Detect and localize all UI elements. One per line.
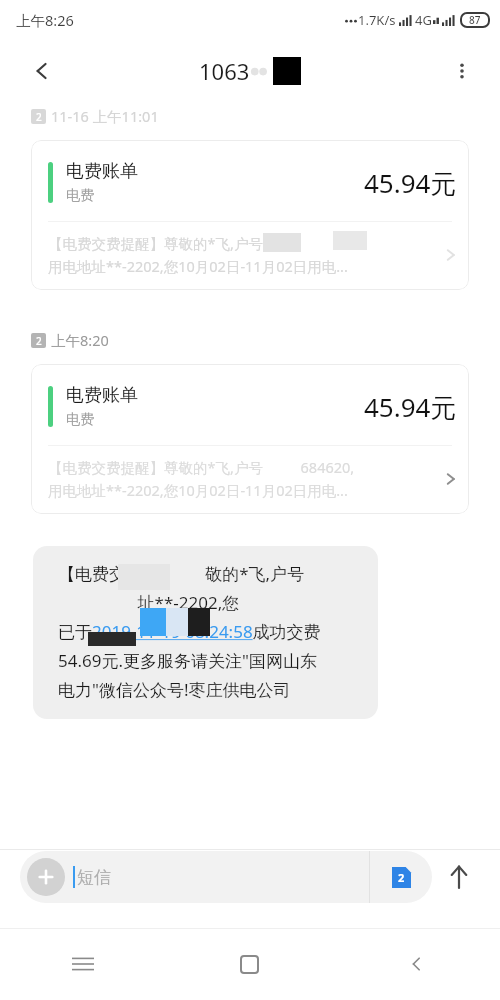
button[interactable]: 【电费交费…… 敬的*飞,户号 xyxy=(33,546,378,719)
button[interactable]: Back xyxy=(333,928,500,1000)
staticText: 上午8:20 xyxy=(51,330,109,350)
staticText: 电力"微信公众号!枣庄供电公司 xyxy=(58,678,291,701)
staticText: 1.7K/s xyxy=(358,11,396,29)
staticText: 用电地址**-2202,您10月02日-11月02日用电... xyxy=(48,256,348,276)
staticText: 2 xyxy=(36,110,42,124)
staticText: 已于2019-11-19 08:24:58成功交费 xyxy=(58,620,321,643)
button[interactable]: 电费账单 xyxy=(31,364,469,514)
staticText: 45.94元 xyxy=(364,165,457,201)
button[interactable]: 电费账单 xyxy=(31,140,469,290)
staticText: 电费 xyxy=(66,187,94,205)
staticText: 4G xyxy=(415,11,432,29)
staticText: 电费 xyxy=(66,411,94,429)
staticText: 【电费交费提醒】尊敬的*飞,户号 xyxy=(48,233,301,253)
staticText: 短信 xyxy=(77,867,111,888)
button[interactable]: Back xyxy=(22,51,62,91)
staticText: 45.94元 xyxy=(364,389,457,425)
button[interactable]: Home xyxy=(166,928,333,1000)
staticText: 【电费交费提醒】尊敬的*飞,户号 684620, xyxy=(48,457,355,477)
staticText: 2 xyxy=(36,334,42,348)
staticText: 2 xyxy=(398,870,405,885)
staticText: 电费账单 xyxy=(66,384,138,407)
button[interactable]: 短信 xyxy=(20,851,432,903)
staticText: 【电费交费…… 敬的*飞,户号 xyxy=(58,562,305,585)
button[interactable]: Recents xyxy=(0,928,166,1000)
staticText: 电费账单 xyxy=(66,160,138,183)
staticText: 上午8:26 xyxy=(16,10,74,30)
staticText: 87 xyxy=(469,13,481,27)
staticText: 址**-2202,您 xyxy=(58,591,240,614)
staticText: 1063 xyxy=(199,56,250,86)
button[interactable]: More options xyxy=(442,51,482,91)
staticText: 用电地址**-2202,您10月02日-11月02日用电... xyxy=(48,480,348,500)
staticText: 11-16 上午11:01 xyxy=(51,106,159,126)
staticText: 54.69元.更多服务请关注"国网山东 xyxy=(58,649,317,672)
button[interactable]: Send xyxy=(432,850,486,904)
